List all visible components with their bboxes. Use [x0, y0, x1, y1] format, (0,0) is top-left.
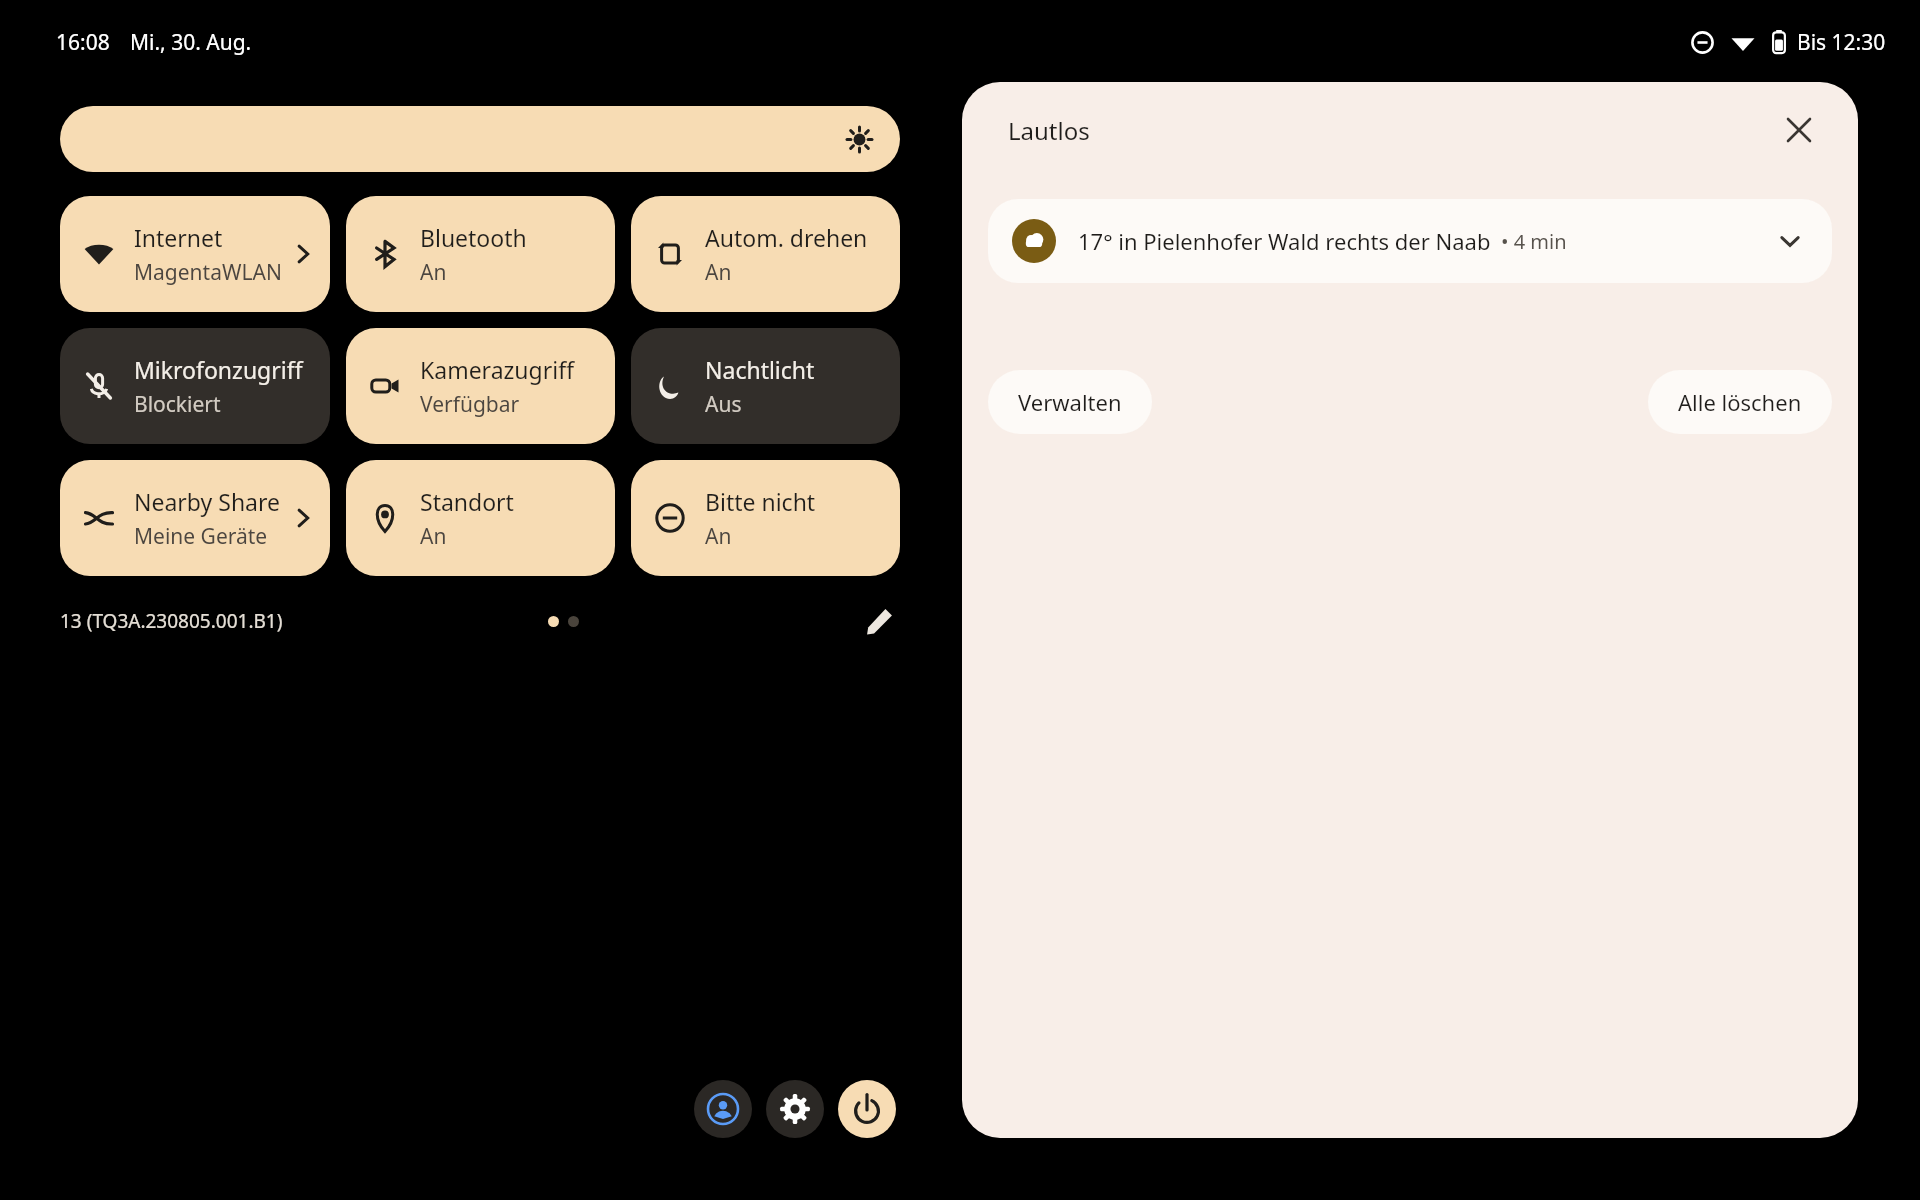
staticText: Autom. drehen: [705, 222, 868, 253]
staticText: Verwalten: [1018, 387, 1122, 417]
staticText: Kamerazugriff: [420, 354, 574, 385]
staticText: • 4 min: [1501, 228, 1567, 255]
staticText: MagentaWLAN: [134, 258, 282, 287]
staticText: An: [420, 258, 447, 287]
button[interactable]: Bitte nicht stören: [631, 460, 900, 576]
staticText: Mi., 30. Aug.: [130, 28, 252, 57]
staticText: Bitte nicht stören: [705, 486, 876, 517]
button[interactable]: Erweitern: [1770, 221, 1810, 261]
staticText: Nearby Share: [134, 486, 281, 517]
button[interactable]: Internet: [60, 196, 330, 312]
staticText: Standort: [420, 486, 514, 517]
staticText: Meine Geräte: [134, 522, 268, 551]
button[interactable]: Ein/Aus: [838, 1080, 896, 1138]
button[interactable]: Standort: [346, 460, 615, 576]
staticText: Alle löschen: [1678, 387, 1802, 417]
staticText: Aus: [705, 390, 742, 419]
button[interactable]: Helligkeit: [60, 106, 900, 172]
button[interactable]: Bearbeiten: [858, 600, 900, 642]
staticText: An: [420, 522, 447, 551]
button[interactable]: Alle löschen: [1648, 370, 1832, 434]
button[interactable]: Verwalten: [988, 370, 1152, 434]
button[interactable]: Mikrofonzugriff: [60, 328, 330, 444]
button[interactable]: Einstellungen: [766, 1080, 824, 1138]
button[interactable]: Nutzer: [694, 1080, 752, 1138]
staticText: 17° in Pielenhofer Wald rechts der Naab: [1078, 226, 1491, 256]
button[interactable]: Schließen: [1776, 107, 1822, 153]
staticText: Bis 12:30: [1797, 28, 1886, 57]
button[interactable]: 17° in Pielenhofer Wald rechts der Naab: [988, 199, 1832, 283]
button[interactable]: Bluetooth: [346, 196, 615, 312]
staticText: Verfügbar: [420, 390, 520, 419]
button[interactable]: Nearby Share: [60, 460, 330, 576]
staticText: 13 (TQ3A.230805.001.B1): [60, 608, 283, 634]
staticText: Internet: [134, 222, 223, 253]
staticText: Nachtlicht: [705, 354, 815, 385]
button[interactable]: Kamerazugriff: [346, 328, 615, 444]
staticText: Bluetooth: [420, 222, 527, 253]
button[interactable]: Autom. drehen: [631, 196, 900, 312]
staticText: An: [705, 258, 732, 287]
staticText: 16:08: [56, 28, 110, 57]
staticText: Blockiert: [134, 390, 221, 419]
button[interactable]: Nachtlicht: [631, 328, 900, 444]
staticText: An: [705, 522, 732, 551]
staticText: Mikrofonzugriff: [134, 354, 303, 385]
staticText: Lautlos: [1008, 114, 1090, 147]
